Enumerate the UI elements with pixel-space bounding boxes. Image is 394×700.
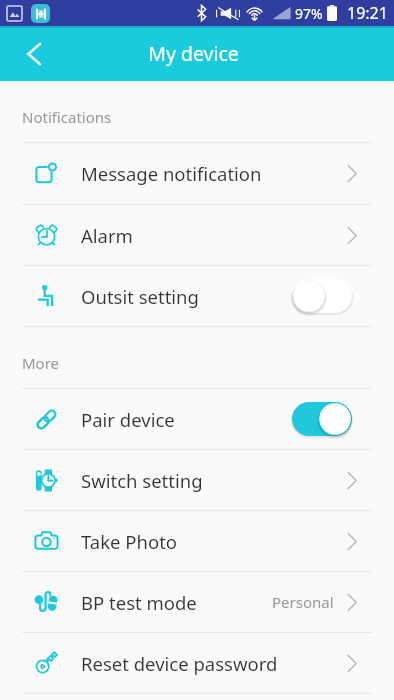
staticText: BP test mode (81, 590, 197, 615)
staticText: Take Photo (81, 529, 177, 554)
button[interactable]: Take Photo (0, 511, 394, 572)
button[interactable]: Pair device (0, 389, 394, 450)
staticText: Alarm (81, 223, 133, 248)
button[interactable]: BP test mode (0, 572, 394, 633)
staticText: Notifications (22, 107, 112, 127)
staticText: More (22, 353, 60, 373)
button[interactable]: Back (0, 26, 56, 81)
button[interactable]: Outsit setting (0, 266, 394, 327)
staticText: 97% (295, 4, 323, 23)
staticText: 19:21 (347, 2, 388, 24)
button[interactable]: Alarm (0, 205, 394, 266)
button[interactable]: Switch setting (0, 450, 394, 511)
staticText: Message notification (81, 161, 262, 186)
staticText: Switch setting (81, 468, 203, 493)
staticText: Reset device password (81, 651, 278, 676)
staticText: My device (148, 40, 239, 67)
staticText: Pair device (81, 407, 175, 432)
button[interactable]: Message notification (0, 143, 394, 205)
staticText: Personal (272, 592, 334, 612)
staticText: Outsit setting (81, 284, 199, 309)
button[interactable]: Reset device password (0, 633, 394, 694)
